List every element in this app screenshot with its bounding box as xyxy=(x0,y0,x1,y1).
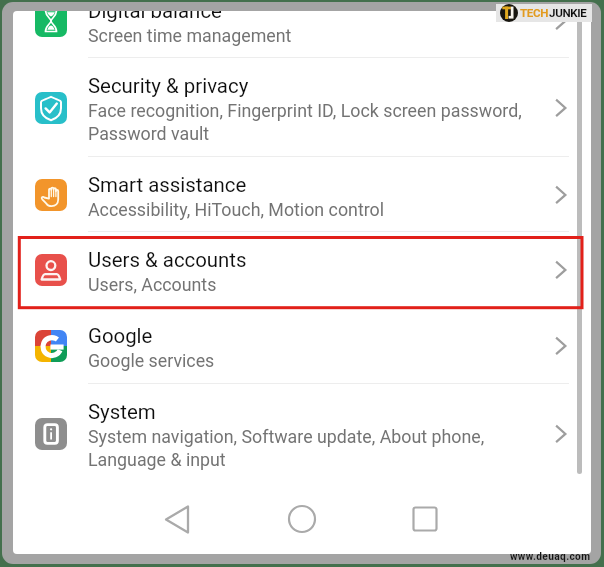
staticText: System navigation, Software update, Abou… xyxy=(88,426,485,447)
staticText: Digital balance xyxy=(88,11,222,23)
staticText: System xyxy=(88,400,156,424)
staticText: Screen time management xyxy=(88,25,292,46)
staticText: Accessibility, HiTouch, Motion control xyxy=(88,199,385,220)
button[interactable]: Users & accounts xyxy=(13,231,591,307)
staticText: Smart assistance xyxy=(88,173,247,197)
button[interactable]: Security & privacy xyxy=(13,57,591,156)
staticText: Google xyxy=(88,324,153,348)
button[interactable]: Recent apps xyxy=(401,495,449,543)
button[interactable]: Home xyxy=(278,495,326,543)
staticText: TECH xyxy=(520,6,549,20)
button[interactable]: Smart assistance xyxy=(13,156,591,232)
staticText: Language & input xyxy=(88,449,226,470)
button[interactable]: Back xyxy=(154,495,202,543)
staticText: Users & accounts xyxy=(88,248,247,272)
staticText: www.deuaq.com xyxy=(510,551,591,563)
button[interactable]: Google xyxy=(13,307,591,383)
staticText: Face recognition, Fingerprint ID, Lock s… xyxy=(88,100,522,121)
button[interactable]: System xyxy=(13,383,591,482)
staticText: JUNKIE xyxy=(549,6,587,20)
staticText: Security & privacy xyxy=(88,74,249,98)
button[interactable]: Digital balance xyxy=(13,11,591,58)
staticText: Password vault xyxy=(88,123,210,144)
staticText: Users, Accounts xyxy=(88,274,217,295)
staticText: Google services xyxy=(88,350,215,371)
